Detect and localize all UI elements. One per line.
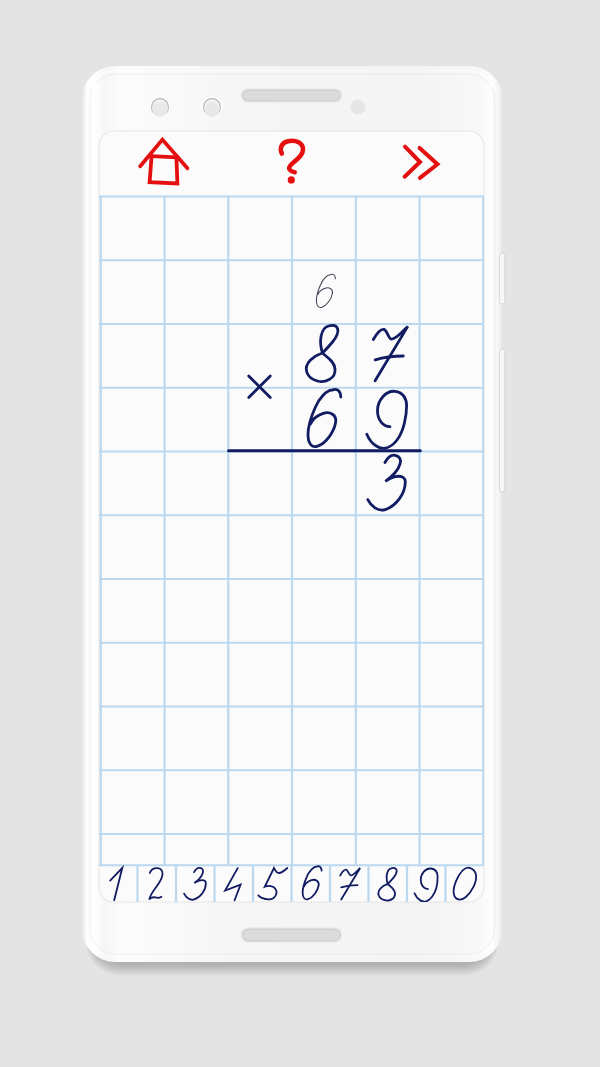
button[interactable]: Home — [132, 134, 198, 190]
button[interactable]: Help — [258, 134, 324, 190]
button[interactable]: Next — [388, 134, 454, 190]
